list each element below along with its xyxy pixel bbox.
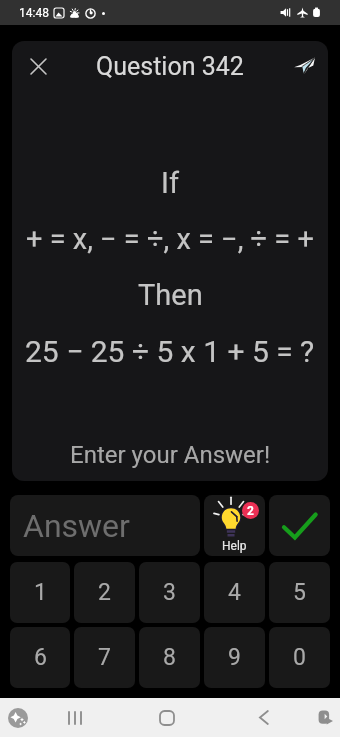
button[interactable]: 0	[269, 627, 330, 688]
staticText: Help	[222, 539, 247, 553]
button[interactable]: 3	[139, 562, 200, 623]
button[interactable]: Answer	[10, 495, 200, 556]
button[interactable]: 1	[10, 562, 70, 623]
button[interactable]: Close	[20, 48, 56, 84]
staticText: Answer	[23, 507, 130, 545]
button[interactable]: 8	[139, 627, 200, 688]
staticText: 9	[228, 644, 241, 671]
button[interactable]: 4	[204, 562, 265, 623]
staticText: Enter your Answer!	[70, 441, 271, 469]
button[interactable]: 6	[10, 627, 70, 688]
button[interactable]: Recent apps	[53, 698, 97, 737]
button[interactable]: Submit answer	[269, 495, 330, 556]
button[interactable]: 2	[204, 495, 265, 556]
button[interactable]: Game tools	[0, 698, 40, 737]
staticText: 14:48	[19, 6, 49, 20]
staticText: 7	[98, 644, 111, 671]
staticText: Question 342	[96, 52, 244, 81]
staticText: 2	[98, 579, 111, 606]
staticText: 8	[163, 644, 176, 671]
staticText: 2	[247, 504, 254, 518]
staticText: + = x, − = ÷, x = −, ÷ = +	[26, 222, 314, 256]
button[interactable]: 5	[269, 562, 330, 623]
button[interactable]: 7	[74, 627, 135, 688]
staticText: 1	[34, 579, 47, 606]
staticText: 25 − 25 ÷ 5 x 1 + 5 = ?	[25, 334, 315, 369]
button[interactable]: 2	[74, 562, 135, 623]
button[interactable]: 9	[204, 627, 265, 688]
button[interactable]: Home	[145, 698, 189, 737]
staticText: 3	[163, 579, 176, 606]
button[interactable]: Hide keyboard	[303, 698, 340, 737]
staticText: If	[161, 166, 179, 200]
staticText: 5	[293, 579, 306, 606]
button[interactable]: Back	[242, 698, 286, 737]
button[interactable]: Send	[286, 48, 322, 84]
staticText: 6	[34, 644, 47, 671]
staticText: 0	[293, 644, 306, 671]
staticText: Then	[138, 278, 203, 312]
staticText: 4	[228, 579, 241, 606]
